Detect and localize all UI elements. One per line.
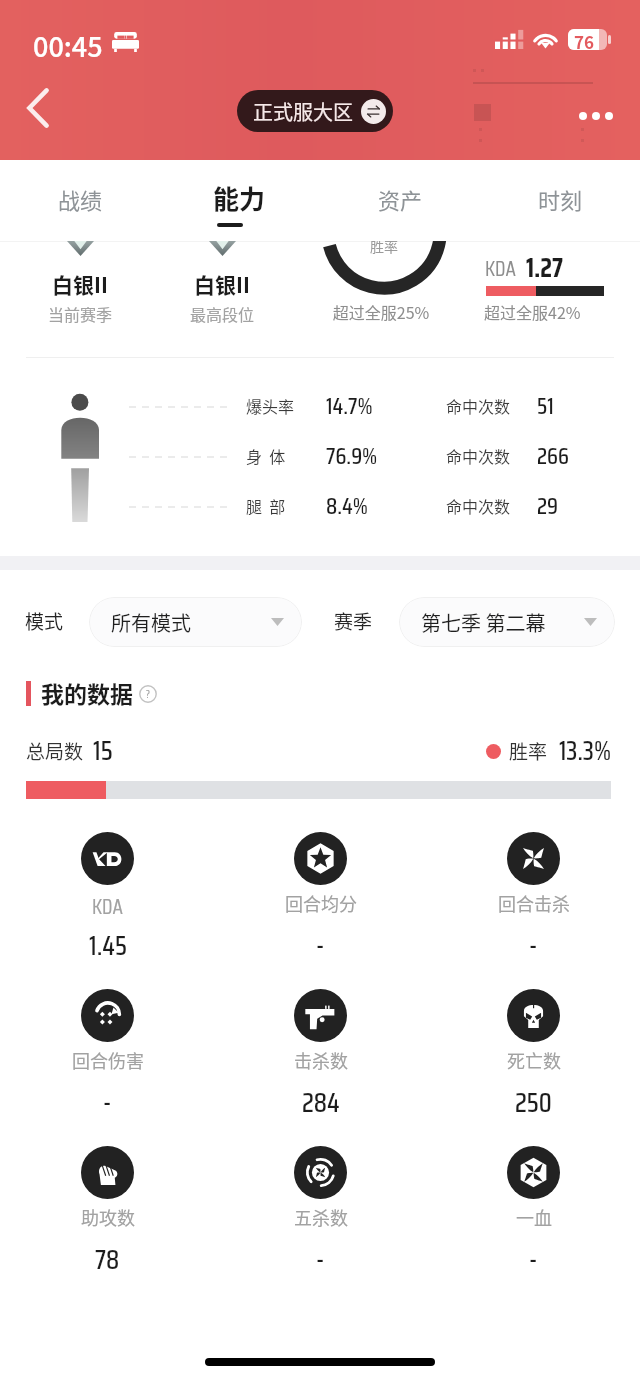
staticText: 1.27 xyxy=(526,247,563,288)
staticText: 正式服大区 xyxy=(253,97,353,126)
button[interactable]: 一血 xyxy=(427,1138,640,1288)
staticText: 死亡数 xyxy=(507,1047,561,1073)
button[interactable]: 死亡数 xyxy=(427,981,640,1131)
staticText: 8.4% xyxy=(326,488,368,524)
staticText: 超过全服42% xyxy=(484,300,581,323)
staticText: 1.45 xyxy=(89,924,127,966)
staticText: 回合伤害 xyxy=(72,1047,144,1073)
staticText: 白银II xyxy=(194,269,250,299)
button[interactable]: 正式服大区 xyxy=(237,90,393,132)
staticText: 14.7% xyxy=(326,388,373,424)
staticText: 胜率 xyxy=(509,737,548,765)
staticText: 29 xyxy=(537,488,559,524)
button[interactable]: 回合均分 xyxy=(214,824,427,974)
staticText: 回合击杀 xyxy=(498,890,570,916)
button[interactable]: KDA xyxy=(1,824,214,974)
button[interactable]: 战绩 xyxy=(0,160,160,241)
staticText: ? xyxy=(146,686,150,703)
staticText: 击杀数 xyxy=(294,1047,348,1073)
staticText: 五杀数 xyxy=(294,1204,348,1230)
staticText: 284 xyxy=(302,1081,340,1123)
staticText: - xyxy=(103,1081,112,1123)
staticText: 爆头率 xyxy=(246,394,295,417)
staticText: 腿 部 xyxy=(246,494,286,517)
staticText: 最高段位 xyxy=(190,302,255,325)
staticText: 13.3% xyxy=(559,730,612,771)
staticText: 胜率 xyxy=(304,241,464,256)
button[interactable]: 时刻 xyxy=(480,160,640,241)
staticText: 模式 xyxy=(25,607,64,635)
staticText: 白银II xyxy=(52,269,108,299)
staticText: 命中次数 xyxy=(446,444,511,467)
staticText: 当前赛季 xyxy=(48,302,113,325)
staticText: 总局数 xyxy=(26,737,84,765)
staticText: 战绩 xyxy=(58,183,103,215)
staticText: 能力 xyxy=(213,179,266,217)
button[interactable]: 击杀数 xyxy=(214,981,427,1131)
staticText: 助攻数 xyxy=(81,1204,135,1230)
button[interactable]: More options xyxy=(573,93,619,139)
button[interactable]: Info xyxy=(139,685,157,703)
staticText: 超过全服25% xyxy=(301,300,461,323)
staticText: 266 xyxy=(537,438,569,474)
staticText: 所有模式 xyxy=(111,608,191,637)
button[interactable]: 助攻数 xyxy=(1,1138,214,1288)
button[interactable]: 能力 xyxy=(159,160,319,241)
button[interactable]: 资产 xyxy=(320,160,480,241)
staticText: 一血 xyxy=(516,1204,552,1230)
staticText: 78 xyxy=(95,1238,120,1280)
staticText: 赛季 xyxy=(334,607,373,635)
button[interactable]: 所有模式 xyxy=(89,597,302,647)
staticText: 76.9% xyxy=(326,438,378,474)
staticText: 15 xyxy=(93,729,113,771)
staticText: - xyxy=(529,1238,538,1280)
button[interactable]: 五杀数 xyxy=(214,1138,427,1288)
staticText: KDA xyxy=(485,252,516,285)
staticText: 76 xyxy=(574,29,595,50)
staticText: - xyxy=(529,924,538,966)
button[interactable]: 回合伤害 xyxy=(1,981,214,1131)
staticText: 250 xyxy=(515,1081,552,1123)
staticText: 我的数据 xyxy=(41,676,133,709)
staticText: 第七季 第二幕 xyxy=(421,608,546,637)
staticText: 51 xyxy=(537,388,554,424)
staticText: 命中次数 xyxy=(446,394,511,417)
staticText: 时刻 xyxy=(538,183,583,215)
staticText: - xyxy=(316,1238,325,1280)
button[interactable]: 第七季 第二幕 xyxy=(399,597,615,647)
staticText: 00:45 xyxy=(33,26,103,65)
staticText: KDA xyxy=(92,890,123,923)
staticText: 身 体 xyxy=(246,444,286,467)
staticText: 资产 xyxy=(378,183,423,215)
staticText: - xyxy=(316,924,325,966)
staticText: 命中次数 xyxy=(446,494,511,517)
staticText: 回合均分 xyxy=(285,890,357,916)
button[interactable]: Back xyxy=(14,84,62,132)
button[interactable]: 回合击杀 xyxy=(427,824,640,974)
